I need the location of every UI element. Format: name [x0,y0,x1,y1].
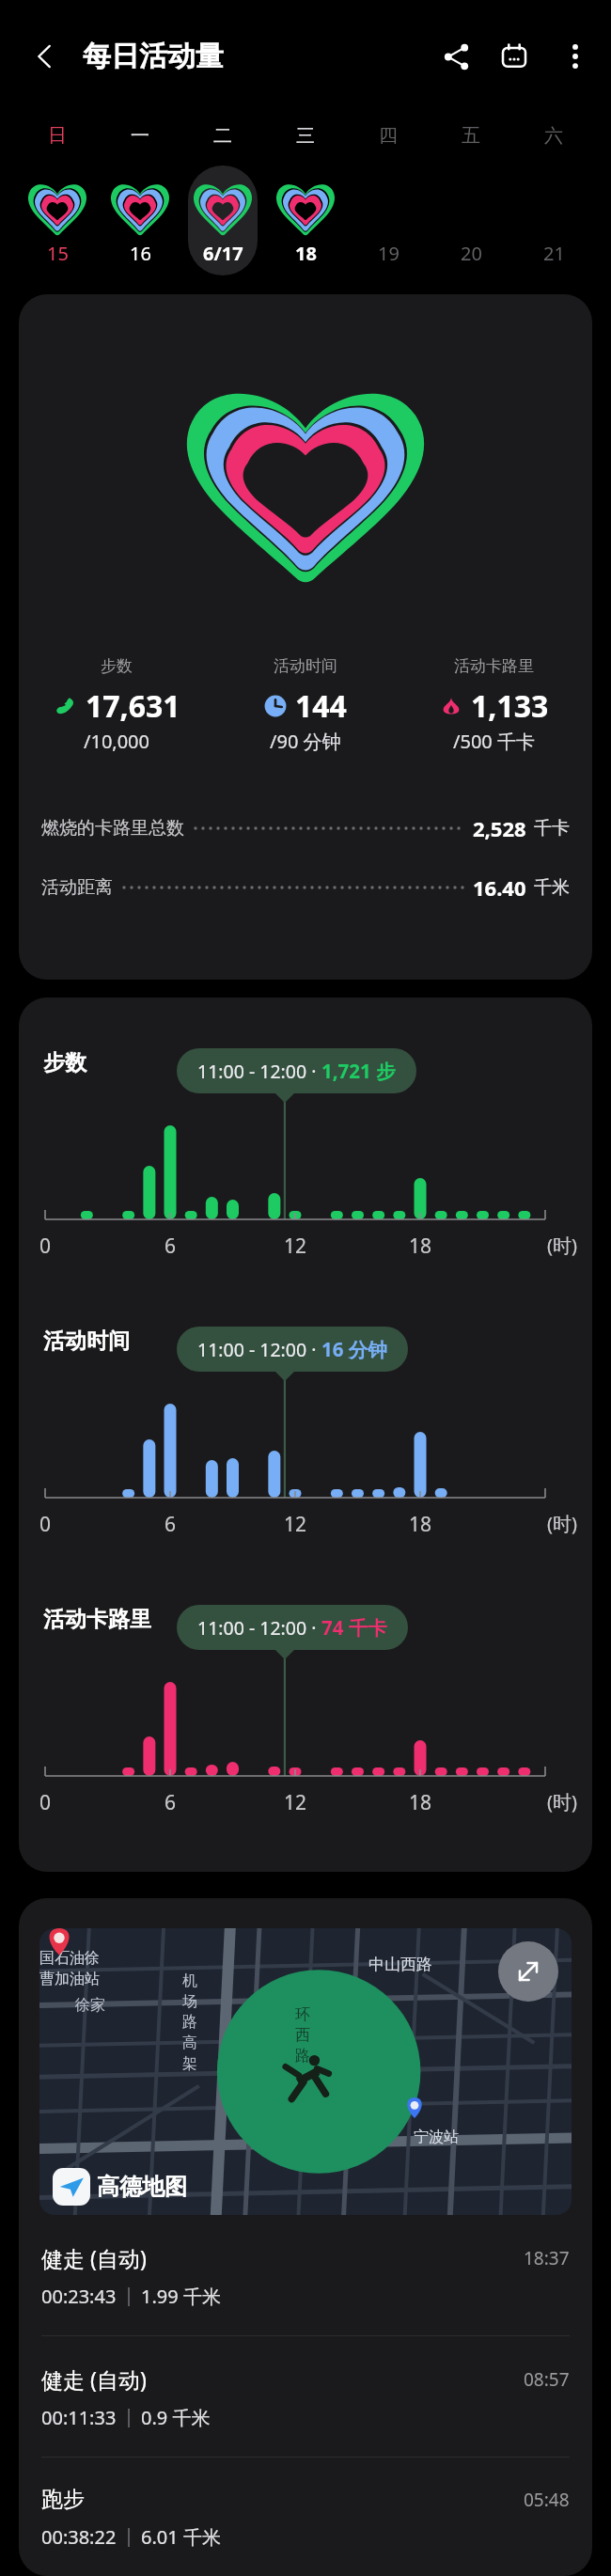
staticText: 11:00 - 12:00 · [197,1059,321,1084]
staticText: 12 [267,1233,323,1260]
staticText: (时) [547,1789,577,1814]
staticText: 08:57 [524,2367,570,2392]
staticText: 1,133 [471,685,549,727]
staticText: 12 [267,1789,323,1816]
staticText: 健走 (自动) [41,2243,147,2272]
staticText: 1.99 千米 [141,2284,221,2309]
button[interactable]: Expand map [498,1941,558,2002]
staticText: 00:11:33 [41,2405,117,2430]
staticText: 6.01 千米 [141,2524,221,2550]
staticText: 步数 [101,656,133,676]
button[interactable]: More options [543,24,607,88]
staticText: 0 [19,1789,73,1816]
staticText: 11:00 - 12:00 · [197,1337,321,1362]
staticText: 00:38:22 [41,2524,117,2550]
staticText: 6/17 [203,241,243,266]
staticText: 步数 [43,1049,86,1076]
staticText: 徐家 [75,1996,105,2015]
button[interactable]: 步数 [19,1031,592,1264]
staticText: 活动卡路里 [454,656,534,676]
staticText: 跑步 [41,2486,85,2513]
staticText: 机 场 路 高 架 [182,1971,197,2073]
staticText: /500 千卡 [453,729,535,754]
button[interactable]: 一 [99,113,181,275]
staticText: 活动距离 [41,876,113,899]
staticText: 18 [392,1789,448,1816]
staticText: 千卡 [534,817,570,840]
staticText: 1,721 步 [321,1058,396,1084]
button[interactable]: Share [427,27,485,86]
staticText: 05:48 [524,2488,570,2512]
button[interactable]: 三 [264,113,347,275]
button[interactable]: Calendar [485,27,543,86]
staticText: 2,528 [473,814,526,842]
staticText: 19 [378,241,399,266]
staticText: 16.40 [473,873,526,902]
button[interactable]: 步数 [19,294,592,980]
button[interactable]: 五 [430,113,512,275]
staticText: /90 分钟 [270,729,341,754]
button[interactable]: Route map [39,1928,572,2215]
button[interactable]: 健走 (自动) [19,2336,592,2458]
staticText: (时) [547,1511,577,1536]
staticText: 18 [392,1511,448,1538]
staticText: 一 [131,124,149,148]
staticText: 六 [544,124,563,148]
staticText: 活动卡路里 [43,1606,151,1633]
staticText: 12 [267,1511,323,1538]
staticText: 日 [48,124,67,148]
staticText: 6 [142,1511,198,1538]
button[interactable]: 六 [512,113,595,275]
staticText: 三 [296,124,315,148]
staticText: 74 千卡 [321,1614,387,1641]
staticText: 国石油徐 曹加油站 [39,1949,100,1988]
staticText: 18 [392,1233,448,1260]
staticText: 18 [295,241,317,266]
staticText: 6 [142,1789,198,1816]
staticText: 环 西 路 [295,2005,310,2066]
staticText: 16 分钟 [321,1336,387,1362]
staticText: (时) [547,1233,577,1258]
staticText: 16 [130,241,151,266]
button[interactable]: 跑步 [19,2458,592,2576]
button[interactable]: 四 [347,113,430,275]
staticText: 0.9 千米 [141,2405,211,2430]
staticText: 千米 [534,876,570,899]
staticText: 15 [47,241,69,266]
staticText: 0 [19,1511,73,1538]
staticText: 每日活动量 [83,39,224,74]
staticText: 20 [461,241,482,266]
staticText: 21 [543,241,565,266]
staticText: 6 [142,1233,198,1260]
button[interactable]: 二 [181,113,264,275]
staticText: 四 [379,124,398,148]
button[interactable]: 日 [16,113,99,275]
staticText: 宁波站 [414,2128,459,2146]
staticText: 00:23:43 [41,2284,117,2309]
button[interactable]: 健走 (自动) [19,2215,592,2336]
button[interactable]: 活动时间 [19,1310,592,1543]
staticText: 中山西路 [368,1955,432,1974]
staticText: /10,000 [84,729,149,754]
staticText: 五 [462,124,480,148]
staticText: 二 [213,124,232,148]
staticText: 燃烧的卡路里总数 [41,817,184,840]
staticText: 144 [295,685,347,727]
staticText: 11:00 - 12:00 · [197,1615,321,1641]
staticText: 活动时间 [274,656,337,676]
button[interactable]: Back [21,32,70,81]
staticText: 17,631 [86,685,180,727]
staticText: 18:37 [524,2246,570,2270]
staticText: 健走 (自动) [41,2364,147,2394]
staticText: 活动时间 [43,1327,130,1355]
button[interactable]: 活动卡路里 [19,1588,592,1821]
staticText: 高德地图 [97,2173,187,2201]
staticText: 0 [19,1233,73,1260]
